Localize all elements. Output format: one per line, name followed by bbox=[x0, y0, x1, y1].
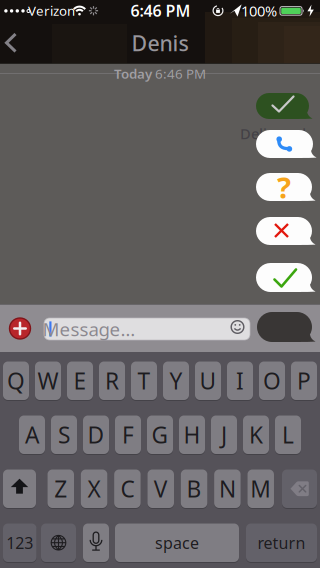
staticText: 6:46 PM bbox=[130, 0, 190, 21]
staticText: I bbox=[236, 366, 244, 396]
button[interactable]: D bbox=[83, 415, 109, 454]
staticText: N bbox=[219, 474, 236, 504]
staticText: J bbox=[221, 420, 227, 450]
staticText: O bbox=[263, 366, 281, 396]
button[interactable]: V bbox=[147, 469, 174, 508]
staticText: B bbox=[187, 474, 202, 504]
button[interactable]: N bbox=[214, 469, 241, 508]
button[interactable]: Send bbox=[257, 312, 316, 342]
button[interactable]: F bbox=[115, 415, 141, 454]
staticText: Delivered bbox=[240, 124, 306, 143]
staticText: E bbox=[73, 366, 86, 396]
staticText: 6:46 PM bbox=[155, 65, 206, 82]
staticText: L bbox=[282, 420, 294, 450]
button[interactable]: X bbox=[81, 469, 107, 508]
button[interactable]: L bbox=[275, 415, 301, 454]
button[interactable]: B bbox=[181, 469, 207, 508]
staticText: return bbox=[257, 532, 305, 553]
staticText: K bbox=[249, 420, 263, 450]
button[interactable]: Y bbox=[163, 361, 189, 400]
button[interactable]: return bbox=[246, 523, 317, 562]
staticText: A bbox=[25, 420, 39, 450]
staticText: 100% bbox=[241, 1, 277, 20]
button[interactable]: K bbox=[243, 415, 269, 454]
button[interactable]: T bbox=[131, 361, 157, 400]
button[interactable]: R bbox=[99, 361, 125, 400]
staticText: T bbox=[137, 366, 150, 396]
staticText: Q bbox=[7, 366, 25, 396]
staticText: space bbox=[155, 532, 199, 553]
button[interactable]: Attach bbox=[9, 318, 30, 339]
staticText: Today bbox=[114, 65, 152, 82]
button[interactable]: P bbox=[291, 361, 317, 400]
button[interactable]: W bbox=[35, 361, 61, 400]
button[interactable]: Z bbox=[47, 469, 74, 508]
staticText: 123 bbox=[6, 532, 33, 553]
button[interactable]: Message bbox=[44, 318, 250, 340]
staticText: V bbox=[154, 474, 168, 504]
button[interactable]: Emoji bbox=[230, 320, 244, 334]
button[interactable]: G bbox=[147, 415, 173, 454]
staticText: H bbox=[183, 420, 200, 450]
button[interactable]: Shift bbox=[3, 469, 36, 508]
staticText: Denis bbox=[131, 29, 188, 57]
staticText: C bbox=[120, 474, 134, 504]
button[interactable]: O bbox=[259, 361, 285, 400]
button[interactable]: space bbox=[115, 523, 239, 562]
button[interactable]: U bbox=[195, 361, 221, 400]
staticText: M bbox=[250, 474, 271, 504]
staticText: U bbox=[199, 366, 216, 396]
staticText: W bbox=[37, 366, 58, 396]
staticText: G bbox=[151, 420, 168, 450]
button[interactable]: Next keyboard bbox=[41, 523, 76, 562]
button[interactable]: Q bbox=[3, 361, 29, 400]
button[interactable]: Delete bbox=[282, 469, 317, 508]
button[interactable]: E bbox=[67, 361, 93, 400]
staticText: D bbox=[87, 420, 104, 450]
button[interactable]: Back bbox=[2, 30, 26, 54]
staticText: Message… bbox=[42, 317, 135, 341]
staticText: P bbox=[297, 366, 311, 396]
button[interactable]: J bbox=[211, 415, 237, 454]
staticText: Y bbox=[169, 366, 182, 396]
button[interactable]: Dictate bbox=[83, 523, 109, 562]
staticText: S bbox=[58, 420, 70, 450]
button[interactable]: M bbox=[247, 469, 274, 508]
staticText: R bbox=[105, 366, 119, 396]
button[interactable]: S bbox=[51, 415, 77, 454]
button[interactable]: C bbox=[114, 469, 141, 508]
button[interactable]: A bbox=[19, 415, 45, 454]
button[interactable]: I bbox=[227, 361, 253, 400]
staticText: X bbox=[88, 474, 101, 504]
staticText: Verizon bbox=[28, 2, 75, 19]
staticText: Z bbox=[54, 474, 67, 504]
button[interactable]: 123 bbox=[3, 523, 36, 562]
button[interactable]: H bbox=[179, 415, 205, 454]
staticText: F bbox=[122, 420, 134, 450]
staticText: ? bbox=[277, 167, 291, 206]
